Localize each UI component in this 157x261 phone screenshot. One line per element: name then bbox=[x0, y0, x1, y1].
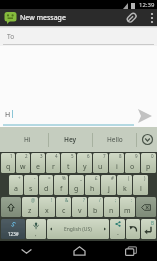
button[interactable]: 0 bbox=[141, 153, 156, 173]
button[interactable]: 6 bbox=[77, 153, 92, 173]
staticText: New message bbox=[20, 13, 66, 23]
button[interactable]: English (US) bbox=[47, 219, 109, 239]
button[interactable]: - bbox=[24, 175, 38, 195]
staticText: q bbox=[6, 162, 11, 172]
staticText: _ bbox=[80, 175, 82, 181]
button[interactable]: @ bbox=[22, 197, 38, 217]
staticText: # bbox=[111, 175, 114, 181]
staticText: @ bbox=[31, 197, 36, 203]
staticText: 0 bbox=[151, 153, 154, 159]
staticText: 8 bbox=[119, 153, 122, 159]
button[interactable]: # bbox=[101, 175, 116, 195]
staticText: b bbox=[93, 206, 98, 216]
button[interactable]: 123# bbox=[1, 219, 25, 239]
staticText: p bbox=[146, 162, 151, 172]
staticText: - bbox=[34, 175, 36, 181]
button[interactable] bbox=[150, 12, 154, 24]
button[interactable]: ) bbox=[133, 175, 148, 195]
button[interactable]: _ bbox=[69, 175, 84, 195]
staticText: % bbox=[62, 175, 66, 181]
staticText: s bbox=[29, 184, 33, 194]
button[interactable]: 4 bbox=[46, 153, 60, 173]
staticText: / bbox=[99, 197, 101, 203]
staticText: £ bbox=[95, 175, 98, 181]
staticText: t bbox=[67, 162, 70, 172]
staticText: Hi bbox=[24, 135, 31, 144]
staticText: n bbox=[109, 206, 114, 216]
button[interactable]: : bbox=[120, 197, 135, 217]
button[interactable]: 3 bbox=[31, 153, 45, 173]
staticText: w bbox=[20, 162, 26, 172]
staticText: 1 bbox=[10, 153, 13, 159]
staticText: l bbox=[140, 184, 142, 194]
staticText: u bbox=[98, 162, 103, 172]
button[interactable] bbox=[1, 197, 21, 217]
staticText: a bbox=[14, 184, 18, 194]
staticText: e bbox=[36, 162, 40, 172]
button[interactable] bbox=[126, 219, 140, 239]
staticText: 123# bbox=[8, 231, 19, 237]
button[interactable] bbox=[137, 127, 157, 152]
button[interactable]: / bbox=[88, 197, 103, 217]
staticText: 3 bbox=[40, 153, 43, 159]
button[interactable] bbox=[136, 197, 156, 217]
button[interactable]: 8 bbox=[109, 153, 124, 173]
button[interactable]: New message bbox=[0, 9, 157, 26]
button[interactable]: = bbox=[39, 175, 53, 195]
button[interactable]: & bbox=[56, 197, 71, 217]
button[interactable]: + bbox=[9, 175, 23, 195]
staticText: Hey bbox=[64, 135, 77, 144]
button[interactable] bbox=[53, 241, 105, 261]
staticText: 7 bbox=[103, 153, 106, 159]
button[interactable]: 5 bbox=[61, 153, 76, 173]
staticText: B bbox=[151, 220, 154, 226]
button[interactable]: ( bbox=[117, 175, 132, 195]
staticText: j bbox=[108, 184, 110, 194]
staticText: ; bbox=[115, 197, 117, 203]
button[interactable]: B bbox=[141, 219, 156, 239]
staticText: z bbox=[28, 206, 32, 216]
button[interactable]: Hello bbox=[93, 127, 136, 152]
button[interactable]: 1 bbox=[1, 153, 15, 173]
staticText: , bbox=[35, 230, 37, 238]
button[interactable]: 9 bbox=[125, 153, 140, 173]
staticText: ( bbox=[128, 175, 130, 181]
staticText: ) bbox=[144, 175, 146, 181]
button[interactable]: % bbox=[54, 175, 68, 195]
staticText: English (US) bbox=[64, 226, 92, 233]
button[interactable]: , bbox=[26, 219, 46, 239]
staticText: 2 bbox=[25, 153, 28, 159]
staticText: = bbox=[48, 175, 51, 181]
button[interactable] bbox=[105, 241, 157, 261]
staticText: r bbox=[52, 162, 55, 172]
staticText: d bbox=[44, 184, 49, 194]
staticText: h bbox=[90, 184, 95, 194]
staticText: Hello bbox=[107, 135, 123, 144]
staticText: y bbox=[83, 162, 87, 172]
staticText: & bbox=[65, 197, 69, 203]
button[interactable] bbox=[0, 241, 53, 261]
button[interactable]: 2 bbox=[16, 153, 30, 173]
staticText: : bbox=[131, 197, 133, 203]
button[interactable] bbox=[137, 109, 153, 123]
staticText: ? bbox=[83, 197, 85, 203]
staticText: i bbox=[116, 162, 118, 172]
staticText: m bbox=[124, 206, 131, 216]
button[interactable]: Hi bbox=[6, 127, 48, 152]
staticText: c bbox=[62, 206, 66, 216]
button[interactable]: . bbox=[110, 219, 125, 239]
staticText: . bbox=[117, 228, 119, 238]
button[interactable]: Hey bbox=[49, 127, 92, 152]
staticText: f bbox=[60, 184, 63, 194]
button[interactable]: 7 bbox=[93, 153, 108, 173]
button[interactable]: To bbox=[0, 26, 157, 46]
staticText: 4 bbox=[55, 153, 58, 159]
button[interactable]: ? bbox=[72, 197, 87, 217]
button[interactable]: ! bbox=[39, 197, 55, 217]
staticText: 5 bbox=[71, 153, 74, 159]
button[interactable] bbox=[125, 11, 138, 24]
staticText: 12:39 bbox=[139, 1, 155, 9]
staticText: v bbox=[78, 206, 82, 216]
button[interactable]: £ bbox=[85, 175, 100, 195]
button[interactable]: ; bbox=[104, 197, 119, 217]
